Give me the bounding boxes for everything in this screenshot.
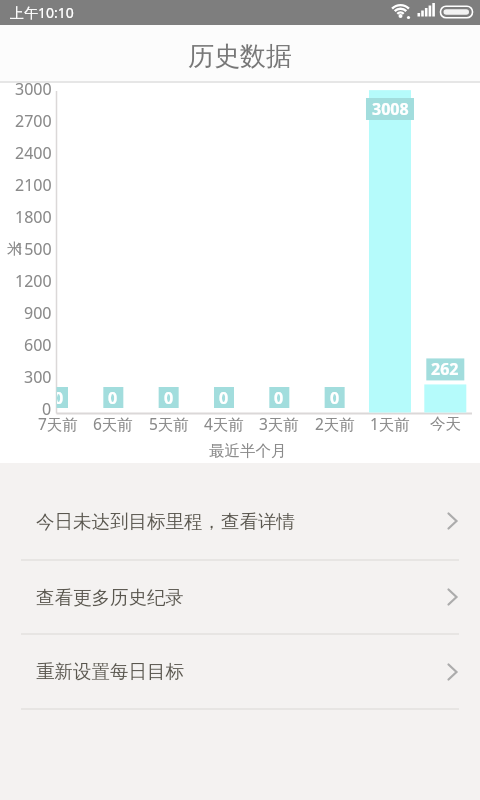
staticText: 1800	[15, 206, 52, 226]
staticText: 0	[57, 387, 64, 408]
staticText: 2100	[15, 174, 52, 194]
staticText: 米	[7, 240, 22, 259]
staticText: 2天前	[315, 413, 355, 434]
staticText: 600	[24, 334, 52, 354]
staticText: 今天	[430, 414, 461, 434]
staticText: 0	[219, 387, 229, 408]
button[interactable]: 查看更多历史纪录	[0, 561, 480, 633]
staticText: 300	[24, 366, 52, 386]
staticText: 重新设置每日目标	[36, 660, 184, 683]
staticText: 6天前	[93, 413, 133, 434]
staticText: 0	[330, 387, 340, 408]
staticText: 1500	[15, 238, 52, 258]
staticText: 0	[164, 387, 174, 408]
staticText: 2400	[15, 142, 52, 162]
button[interactable]: 重新设置每日目标	[0, 635, 480, 708]
staticText: 1200	[15, 270, 52, 290]
staticText: 5天前	[149, 413, 189, 434]
staticText: 7天前	[38, 413, 78, 434]
staticText: 3天前	[259, 413, 299, 434]
staticText: 历史数据	[188, 40, 292, 73]
staticText: 0	[42, 398, 52, 418]
staticText: 查看更多历史纪录	[36, 586, 184, 609]
staticText: 今日未达到目标里程，查看详情	[36, 510, 295, 533]
staticText: 2700	[15, 110, 52, 130]
staticText: 900	[24, 302, 52, 322]
staticText: 0	[108, 387, 118, 408]
staticText: 上午10:10	[10, 3, 74, 22]
staticText: 1天前	[370, 413, 410, 434]
staticText: 0	[274, 387, 284, 408]
staticText: 3008	[372, 98, 409, 120]
staticText: 262	[431, 358, 459, 380]
staticText: 最近半个月	[209, 441, 287, 461]
button[interactable]: 今日未达到目标里程，查看详情	[0, 483, 480, 559]
staticText: 3000	[15, 78, 52, 98]
staticText: 4天前	[204, 413, 244, 434]
